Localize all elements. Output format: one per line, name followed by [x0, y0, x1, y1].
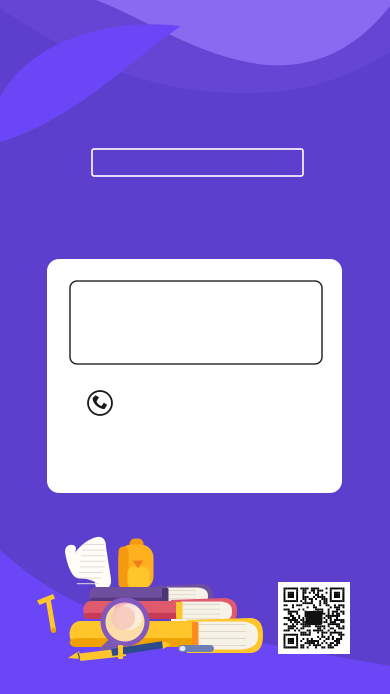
button[interactable]: Call [85, 388, 115, 418]
